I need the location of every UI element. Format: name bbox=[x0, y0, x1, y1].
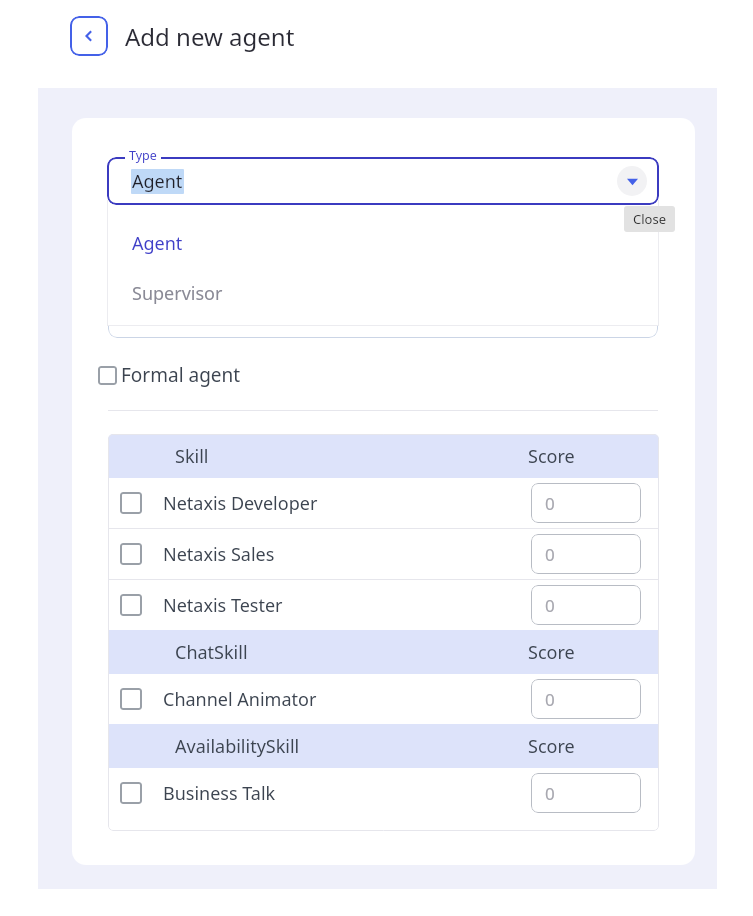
button[interactable]: Formal agent bbox=[98, 362, 241, 388]
staticText: 0 bbox=[545, 688, 555, 711]
staticText: Agent bbox=[132, 231, 183, 256]
button[interactable]: Open dropdown bbox=[617, 166, 647, 196]
button[interactable]: Business Talk bbox=[108, 768, 659, 818]
staticText: Netaxis Tester bbox=[163, 593, 283, 618]
staticText: 0 bbox=[545, 782, 555, 805]
button[interactable]: Supervisor bbox=[107, 268, 659, 318]
staticText: AvailabilitySkill bbox=[175, 734, 300, 759]
staticText: Skill bbox=[175, 444, 209, 469]
button[interactable]: Netaxis Tester bbox=[108, 580, 659, 630]
button[interactable]: Channel Animator bbox=[108, 674, 659, 724]
button[interactable]: Agent bbox=[107, 218, 659, 268]
staticText: Supervisor bbox=[132, 281, 223, 306]
staticText: Score bbox=[528, 444, 575, 469]
staticText: Business Talk bbox=[163, 781, 276, 806]
staticText: Score bbox=[528, 640, 575, 665]
button[interactable]: 0 bbox=[531, 585, 641, 625]
staticText: Type bbox=[129, 147, 157, 164]
button[interactable] bbox=[108, 260, 658, 338]
button[interactable]: Netaxis Sales bbox=[108, 529, 659, 579]
button[interactable]: 0 bbox=[531, 483, 641, 523]
staticText: 0 bbox=[545, 543, 555, 566]
staticText: Score bbox=[528, 734, 575, 759]
button[interactable]: Back bbox=[70, 16, 108, 56]
staticText: Close bbox=[633, 210, 666, 228]
staticText: 0 bbox=[545, 594, 555, 617]
button[interactable]: Agent bbox=[107, 157, 659, 205]
button[interactable]: Netaxis Developer bbox=[108, 478, 659, 528]
staticText: Formal agent bbox=[121, 362, 241, 388]
staticText: ChatSkill bbox=[175, 640, 248, 665]
staticText: Add new agent bbox=[125, 20, 295, 53]
staticText: Netaxis Sales bbox=[163, 542, 275, 567]
staticText: Agent bbox=[132, 169, 183, 194]
button[interactable]: 0 bbox=[531, 679, 641, 719]
button[interactable]: 0 bbox=[531, 773, 641, 813]
button[interactable]: 0 bbox=[531, 534, 641, 574]
staticText: Channel Animator bbox=[163, 687, 317, 712]
staticText: 0 bbox=[545, 492, 555, 515]
staticText: Netaxis Developer bbox=[163, 491, 318, 516]
